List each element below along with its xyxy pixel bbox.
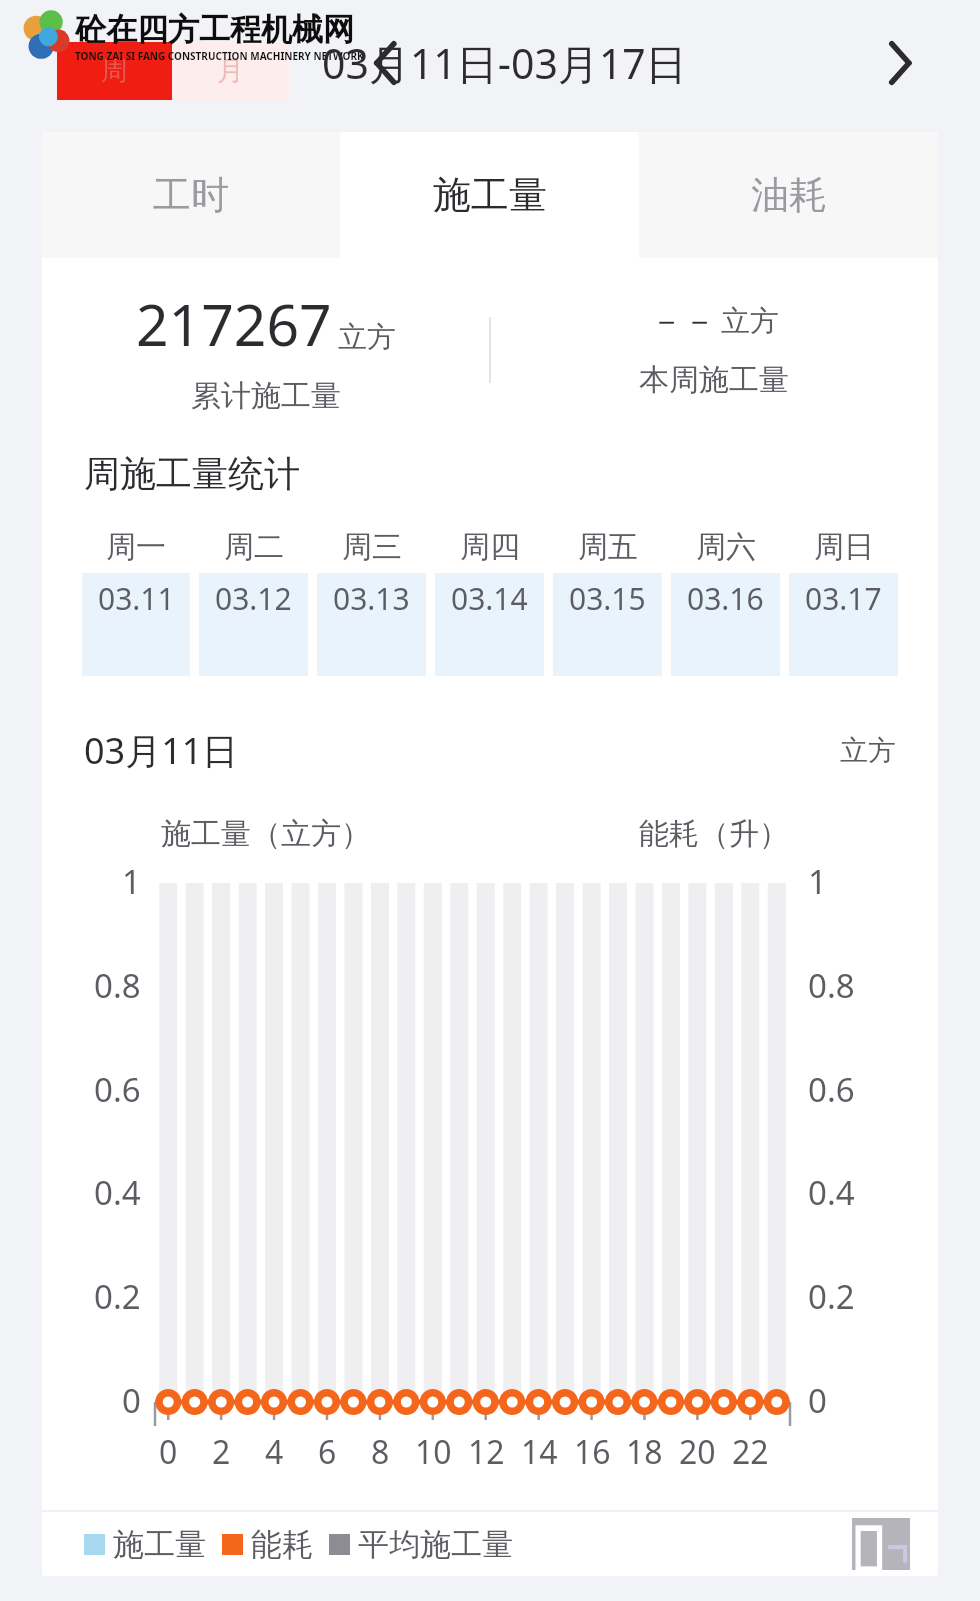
staticText: －－ — [650, 300, 716, 342]
staticText: 立方 — [721, 303, 779, 340]
staticText: 0 — [159, 1430, 178, 1474]
staticText: 03月11日 — [84, 726, 239, 775]
staticText: 8 — [371, 1430, 390, 1474]
staticText: 0.4 — [94, 1170, 141, 1215]
button[interactable]: 能耗 — [222, 1525, 313, 1564]
staticText: 1 — [122, 859, 141, 904]
button[interactable]: 周日 — [789, 528, 898, 676]
staticText: 03.14 — [451, 578, 528, 619]
staticText: 0 — [808, 1378, 827, 1423]
staticText: 立方 — [840, 733, 896, 768]
staticText: 03.12 — [215, 578, 292, 619]
staticText: 周六 — [696, 528, 756, 566]
button[interactable]: 周 — [57, 42, 172, 100]
button[interactable]: 油耗 — [639, 132, 938, 258]
staticText: 16 — [574, 1430, 611, 1474]
staticText: 施工量 — [433, 171, 547, 219]
staticText: 砼在四方工程机械网 — [75, 10, 354, 49]
button[interactable]: 周五 — [553, 528, 662, 676]
button[interactable]: 周四 — [435, 528, 544, 676]
staticText: 周二 — [224, 528, 284, 566]
button[interactable]: 平均施工量 — [329, 1525, 513, 1564]
staticText: 周施工量统计 — [84, 451, 300, 496]
button[interactable]: 周六 — [671, 528, 780, 676]
staticText: 施工量（立方） — [161, 815, 371, 853]
staticText: 0.2 — [808, 1274, 855, 1319]
staticText: 周三 — [342, 528, 402, 566]
staticText: 03.16 — [687, 578, 764, 619]
staticText: 工时 — [153, 171, 229, 219]
staticText: 周一 — [106, 528, 166, 566]
other: Logo — [852, 1518, 910, 1570]
staticText: 217267 — [136, 285, 332, 363]
staticText: 03.13 — [333, 578, 410, 619]
staticText: 周五 — [578, 528, 638, 566]
staticText: TONG ZAI SI FANG CONSTRUCTION MACHINERY … — [75, 49, 364, 63]
staticText: 0.6 — [808, 1067, 855, 1112]
staticText: 4 — [265, 1430, 284, 1474]
staticText: 油耗 — [751, 171, 827, 219]
staticText: 2 — [212, 1430, 231, 1474]
staticText: 12 — [468, 1430, 505, 1474]
staticText: 周日 — [814, 528, 874, 566]
button[interactable]: Previous week — [345, 0, 425, 126]
staticText: 本周施工量 — [639, 361, 789, 399]
staticText: 平均施工量 — [358, 1525, 513, 1564]
staticText: 0.4 — [808, 1170, 855, 1215]
staticText: 施工量 — [113, 1525, 206, 1564]
staticText: 03.11 — [98, 578, 175, 619]
staticText: 14 — [521, 1430, 558, 1474]
staticText: 0 — [122, 1378, 141, 1423]
button[interactable]: Next week — [860, 0, 940, 126]
staticText: 立方 — [338, 319, 396, 356]
button[interactable]: 周一 — [82, 528, 190, 676]
staticText: 0.2 — [94, 1274, 141, 1319]
staticText: 03.17 — [805, 578, 882, 619]
staticText: 0.8 — [94, 963, 141, 1008]
button[interactable]: 施工量 — [84, 1525, 206, 1564]
button[interactable]: 工时 — [42, 132, 340, 258]
staticText: 6 — [318, 1430, 337, 1474]
button[interactable]: 周三 — [317, 528, 426, 676]
staticText: 周四 — [460, 528, 520, 566]
staticText: 周 — [101, 54, 128, 88]
staticText: 能耗 — [251, 1525, 313, 1564]
staticText: 03月11日-03月17日 — [322, 35, 687, 91]
staticText: 0.8 — [808, 963, 855, 1008]
staticText: 能耗（升） — [639, 815, 789, 853]
staticText: 累计施工量 — [191, 377, 341, 415]
staticText: 0.6 — [94, 1067, 141, 1112]
staticText: 20 — [679, 1430, 716, 1474]
staticText: 03.15 — [569, 578, 646, 619]
staticText: 月 — [217, 54, 244, 88]
staticText: 18 — [626, 1430, 663, 1474]
staticText: 10 — [415, 1430, 452, 1474]
staticText: 22 — [732, 1430, 769, 1474]
button[interactable]: 周二 — [199, 528, 308, 676]
button[interactable]: 月 — [172, 42, 289, 100]
staticText: 1 — [808, 859, 827, 904]
button[interactable]: 施工量 — [340, 132, 639, 258]
